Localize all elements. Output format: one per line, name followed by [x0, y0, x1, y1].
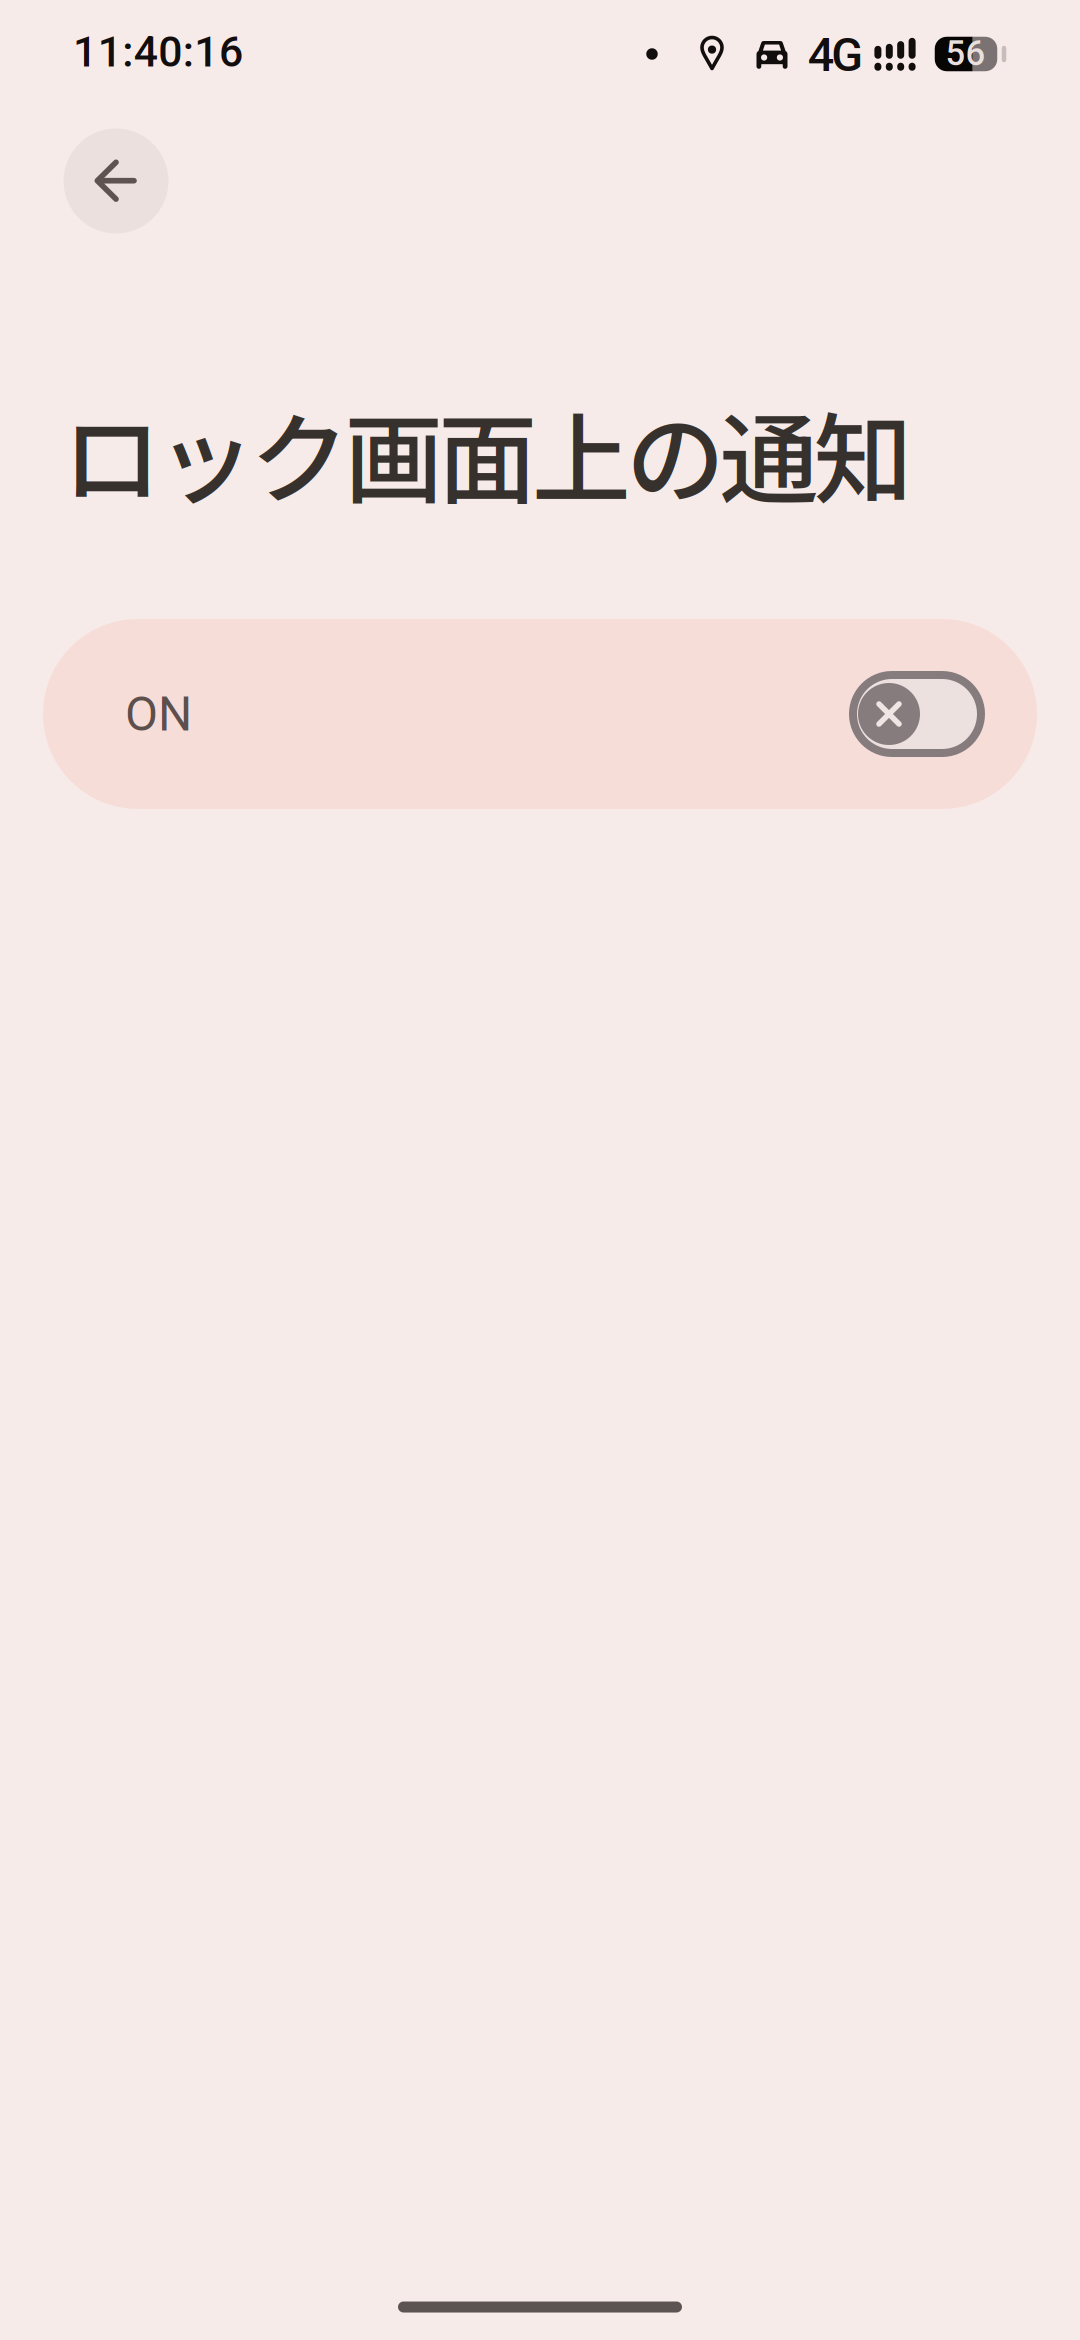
staticText: 56 — [945, 33, 985, 74]
button[interactable]: Back — [63, 128, 168, 233]
staticText: 4G — [808, 28, 863, 82]
staticText: ロック画面上の通知 — [62, 381, 913, 524]
button[interactable]: ON — [43, 619, 1037, 809]
staticText: ON — [125, 686, 192, 742]
staticText: 11:40:16 — [73, 27, 243, 77]
